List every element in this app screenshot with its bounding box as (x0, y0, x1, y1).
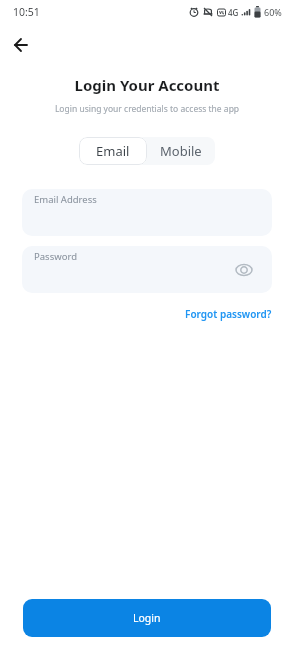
staticText: Mobile (160, 142, 202, 160)
button[interactable]: Login (23, 599, 271, 637)
staticText: Login using your credentials to access t… (0, 103, 294, 115)
button[interactable]: Mobile (147, 137, 215, 165)
staticText: 10:51 (13, 5, 40, 19)
staticText: Email (96, 142, 130, 160)
staticText: Email Address (34, 193, 97, 206)
button[interactable] (7, 31, 35, 59)
button[interactable]: Email (79, 137, 147, 165)
staticText: Login Your Account (0, 75, 294, 95)
button[interactable] (234, 260, 254, 280)
button[interactable]: Forgot password? (185, 307, 272, 321)
staticText: Login (133, 611, 161, 625)
staticText: 60% (264, 6, 282, 18)
button[interactable]: Password (22, 246, 272, 293)
staticText: Forgot password? (185, 307, 272, 321)
staticText: 4G (228, 7, 239, 18)
staticText: Password (34, 250, 77, 263)
button[interactable]: Email Address (22, 189, 272, 236)
